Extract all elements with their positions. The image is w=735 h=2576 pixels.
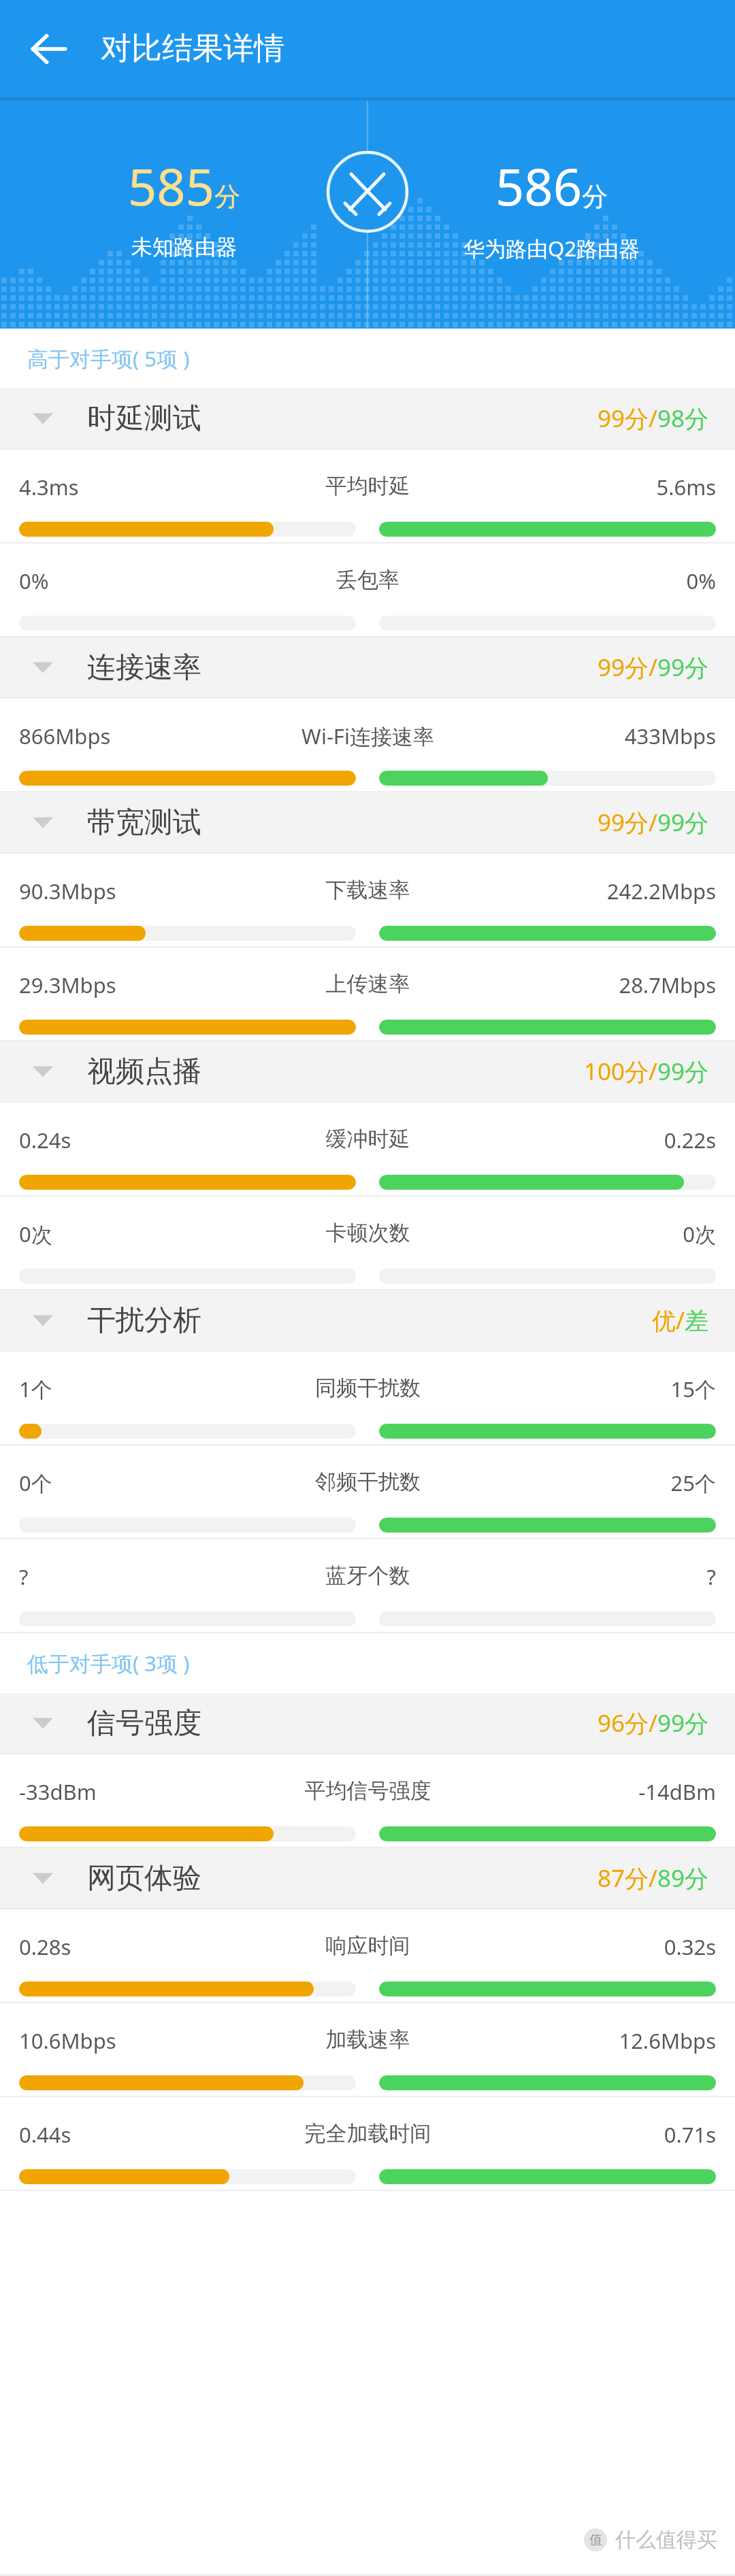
staticText: 高于对手项( 5项 ) (27, 344, 190, 373)
staticText: 连接速率 (87, 650, 201, 686)
staticText: Wi-Fi连接速率 (244, 722, 491, 750)
staticText: 99分/99分 (598, 806, 709, 839)
staticText: 同频干扰数 (244, 1375, 491, 1401)
staticText: 邻频干扰数 (244, 1469, 491, 1495)
button[interactable]: Back (18, 18, 80, 80)
staticText: 对比结果详情 (101, 29, 284, 68)
staticText: 0% (491, 567, 716, 595)
staticText: 信号强度 (87, 1705, 201, 1741)
button[interactable]: 10.6Mbps (0, 2003, 735, 2096)
staticText: 网页体验 (87, 1860, 201, 1896)
staticText: 99分/98分 (598, 402, 709, 435)
staticText: 0.71s (491, 2120, 716, 2149)
staticText: 完全加载时间 (244, 2120, 491, 2147)
staticText: 0.32s (491, 1933, 716, 1961)
staticText: 0次 (491, 1220, 716, 1248)
staticText: 响应时间 (244, 1933, 491, 1959)
button[interactable]: 干扰分析 (0, 1290, 735, 1350)
staticText: 0个 (19, 1469, 244, 1497)
staticText: 15个 (491, 1375, 716, 1403)
button[interactable]: 连接速率 (0, 637, 735, 697)
staticText: 加载速率 (244, 2026, 491, 2053)
staticText: ? (491, 1562, 716, 1591)
staticText: 什么值得买 (615, 2527, 717, 2553)
staticText: 平均时延 (244, 473, 491, 499)
staticText: -14dBm (491, 1777, 716, 1806)
staticText: 带宽测试 (87, 805, 201, 841)
staticText: 99分/99分 (598, 651, 709, 684)
button[interactable]: 0个 (0, 1445, 735, 1538)
button[interactable]: 90.3Mbps (0, 854, 735, 946)
staticText: 下载速率 (244, 877, 491, 903)
staticText: 28.7Mbps (491, 971, 716, 999)
button[interactable]: 视频点播 (0, 1041, 735, 1101)
staticText: 0次 (19, 1220, 244, 1248)
staticText: ? (19, 1562, 244, 1591)
staticText: 丢包率 (244, 567, 491, 593)
staticText: 优/差 (652, 1304, 709, 1337)
staticText: 低于对手项( 3项 ) (27, 1649, 190, 1677)
button[interactable]: 信号强度 (0, 1693, 735, 1753)
staticText: 0.24s (19, 1126, 244, 1154)
staticText: 96分/99分 (598, 1707, 709, 1739)
staticText: 585分 (128, 152, 240, 220)
staticText: 蓝牙个数 (244, 1562, 491, 1589)
staticText: 90.3Mbps (19, 877, 244, 905)
button[interactable]: 4.3ms (0, 450, 735, 542)
staticText: 12.6Mbps (491, 2026, 716, 2055)
staticText: 华为路由Q2路由器 (463, 234, 640, 263)
staticText: 平均信号强度 (244, 1777, 491, 1804)
staticText: 87分/89分 (598, 1862, 709, 1894)
button[interactable]: 0% (0, 543, 735, 636)
button[interactable]: 29.3Mbps (0, 948, 735, 1040)
button[interactable]: 带宽测试 (0, 792, 735, 852)
button[interactable]: 0.44s (0, 2097, 735, 2190)
staticText: 5.6ms (491, 473, 716, 501)
staticText: 0.44s (19, 2120, 244, 2149)
staticText: 0% (19, 567, 244, 595)
staticText: 干扰分析 (87, 1303, 201, 1339)
staticText: 卡顿次数 (244, 1220, 491, 1246)
staticText: 未知路由器 (131, 234, 237, 261)
staticText: 上传速率 (244, 971, 491, 997)
staticText: 值 (589, 2532, 602, 2548)
staticText: 10.6Mbps (19, 2026, 244, 2055)
staticText: 0.22s (491, 1126, 716, 1154)
staticText: 25个 (491, 1469, 716, 1497)
button[interactable]: -33dBm (0, 1754, 735, 1847)
staticText: -33dBm (19, 1777, 244, 1806)
button[interactable]: 0次 (0, 1197, 735, 1289)
staticText: 29.3Mbps (19, 971, 244, 999)
staticText: 0.28s (19, 1933, 244, 1961)
button[interactable]: 0.28s (0, 1909, 735, 2002)
staticText: 4.3ms (19, 473, 244, 501)
staticText: 433Mbps (491, 722, 716, 750)
staticText: 缓冲时延 (244, 1126, 491, 1152)
button[interactable]: 时延测试 (0, 388, 735, 448)
button[interactable]: 866Mbps (0, 699, 735, 791)
button[interactable]: ? (0, 1539, 735, 1632)
button[interactable]: 网页体验 (0, 1848, 735, 1908)
staticText: 866Mbps (19, 722, 244, 750)
staticText: 1个 (19, 1375, 244, 1403)
button[interactable]: 0.24s (0, 1103, 735, 1195)
staticText: 100分/99分 (584, 1055, 709, 1088)
staticText: 242.2Mbps (491, 877, 716, 905)
staticText: 586分 (495, 152, 608, 220)
button[interactable]: 1个 (0, 1352, 735, 1444)
staticText: 视频点播 (87, 1054, 201, 1090)
staticText: 时延测试 (87, 401, 201, 437)
